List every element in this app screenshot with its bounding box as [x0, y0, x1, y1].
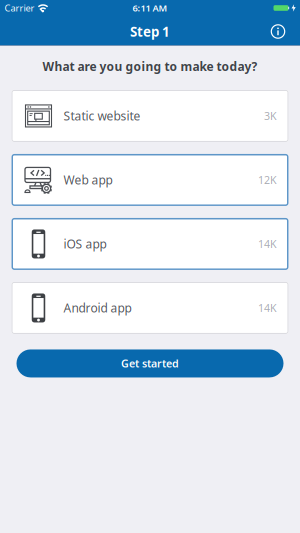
staticText: 12K	[258, 173, 277, 187]
staticText: Android app	[63, 300, 131, 316]
staticText: 14K	[258, 301, 277, 315]
button[interactable]: iOS app	[11, 218, 288, 270]
staticText: What are you going to make today?	[42, 58, 257, 74]
staticText: 14K	[258, 237, 277, 251]
button[interactable]: Get started	[16, 349, 283, 377]
button[interactable]: Web app	[11, 154, 288, 206]
staticText: iOS app	[63, 236, 106, 252]
button[interactable]: Android app	[11, 282, 288, 334]
button[interactable]: Info	[270, 24, 300, 39]
staticText: Get started	[121, 356, 179, 371]
staticText: Web app	[63, 172, 112, 188]
staticText: Static website	[63, 108, 140, 124]
staticText: Carrier	[4, 2, 34, 14]
staticText: 3K	[264, 109, 277, 123]
staticText: Step 1	[130, 23, 170, 40]
staticText: 6:11 AM	[132, 2, 167, 14]
button[interactable]: Static website	[11, 90, 288, 142]
